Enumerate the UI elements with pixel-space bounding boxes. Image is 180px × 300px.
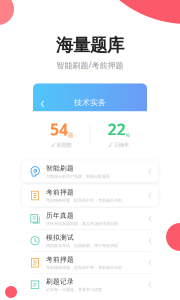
staticText: 智能刷题 xyxy=(46,164,74,172)
button[interactable]: 历年真题 xyxy=(22,207,158,229)
staticText: 正确率 xyxy=(114,142,129,148)
staticText: 记录每一次刷题，查看学习进度 xyxy=(46,287,102,292)
staticText: 历年真题 xyxy=(46,211,74,220)
staticText: 智能刷题/考前押题 xyxy=(56,60,123,70)
button[interactable]: 考前押题 xyxy=(22,251,158,273)
staticText: 22 xyxy=(107,119,125,140)
staticText: % xyxy=(125,131,129,139)
button[interactable]: 返回 xyxy=(37,98,48,109)
staticText: 考前精准押题，提高命中率，考前最后冲刺 xyxy=(46,265,122,270)
staticText: 刷题数 xyxy=(57,142,72,148)
button[interactable]: 刷题记录 xyxy=(22,273,158,295)
staticText: 大数据分析用户做题，智能分配题库 xyxy=(46,174,110,179)
staticText: 54 xyxy=(50,119,68,140)
button[interactable]: 智能刷题 xyxy=(22,160,158,182)
staticText: 历年考试真题再现，真实考场的优质训练 xyxy=(46,221,118,226)
staticText: 考前精准押题，提高命中率，考前最后冲刺 xyxy=(46,198,122,203)
button[interactable]: 考前押题 xyxy=(22,184,158,206)
staticText: 模拟测试 xyxy=(46,233,74,242)
staticText: 技术实务 xyxy=(74,98,106,107)
staticText: 题 xyxy=(68,132,73,139)
staticText: 模拟真实考试，自我检测，用于考前演练 xyxy=(46,243,118,248)
staticText: 考前押题 xyxy=(46,188,74,196)
staticText: 考前押题 xyxy=(46,255,74,264)
staticText: 刷题记录 xyxy=(46,277,74,286)
button[interactable]: 模拟测试 xyxy=(22,229,158,251)
staticText: 海量题库 xyxy=(56,34,124,56)
